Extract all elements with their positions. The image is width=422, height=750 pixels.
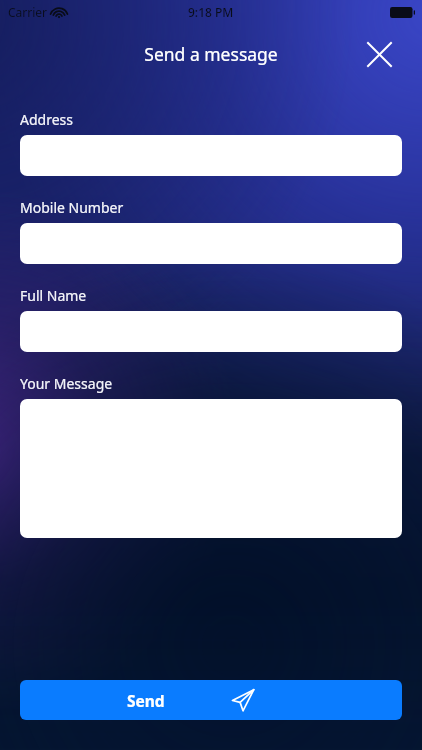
staticText: Send bbox=[127, 690, 165, 711]
staticText: Carrier bbox=[8, 4, 48, 20]
staticText: Full Name bbox=[20, 286, 87, 305]
staticText: Send a message bbox=[144, 42, 278, 66]
button[interactable] bbox=[20, 223, 402, 264]
button[interactable] bbox=[20, 399, 402, 538]
button[interactable]: Close bbox=[362, 37, 396, 71]
staticText: 9:18 PM bbox=[188, 4, 234, 20]
staticText: Your Message bbox=[20, 374, 113, 393]
button[interactable] bbox=[20, 311, 402, 352]
button[interactable]: Send bbox=[20, 680, 402, 720]
staticText: Address bbox=[20, 110, 73, 129]
staticText: Mobile Number bbox=[20, 198, 124, 217]
button[interactable] bbox=[20, 135, 402, 176]
